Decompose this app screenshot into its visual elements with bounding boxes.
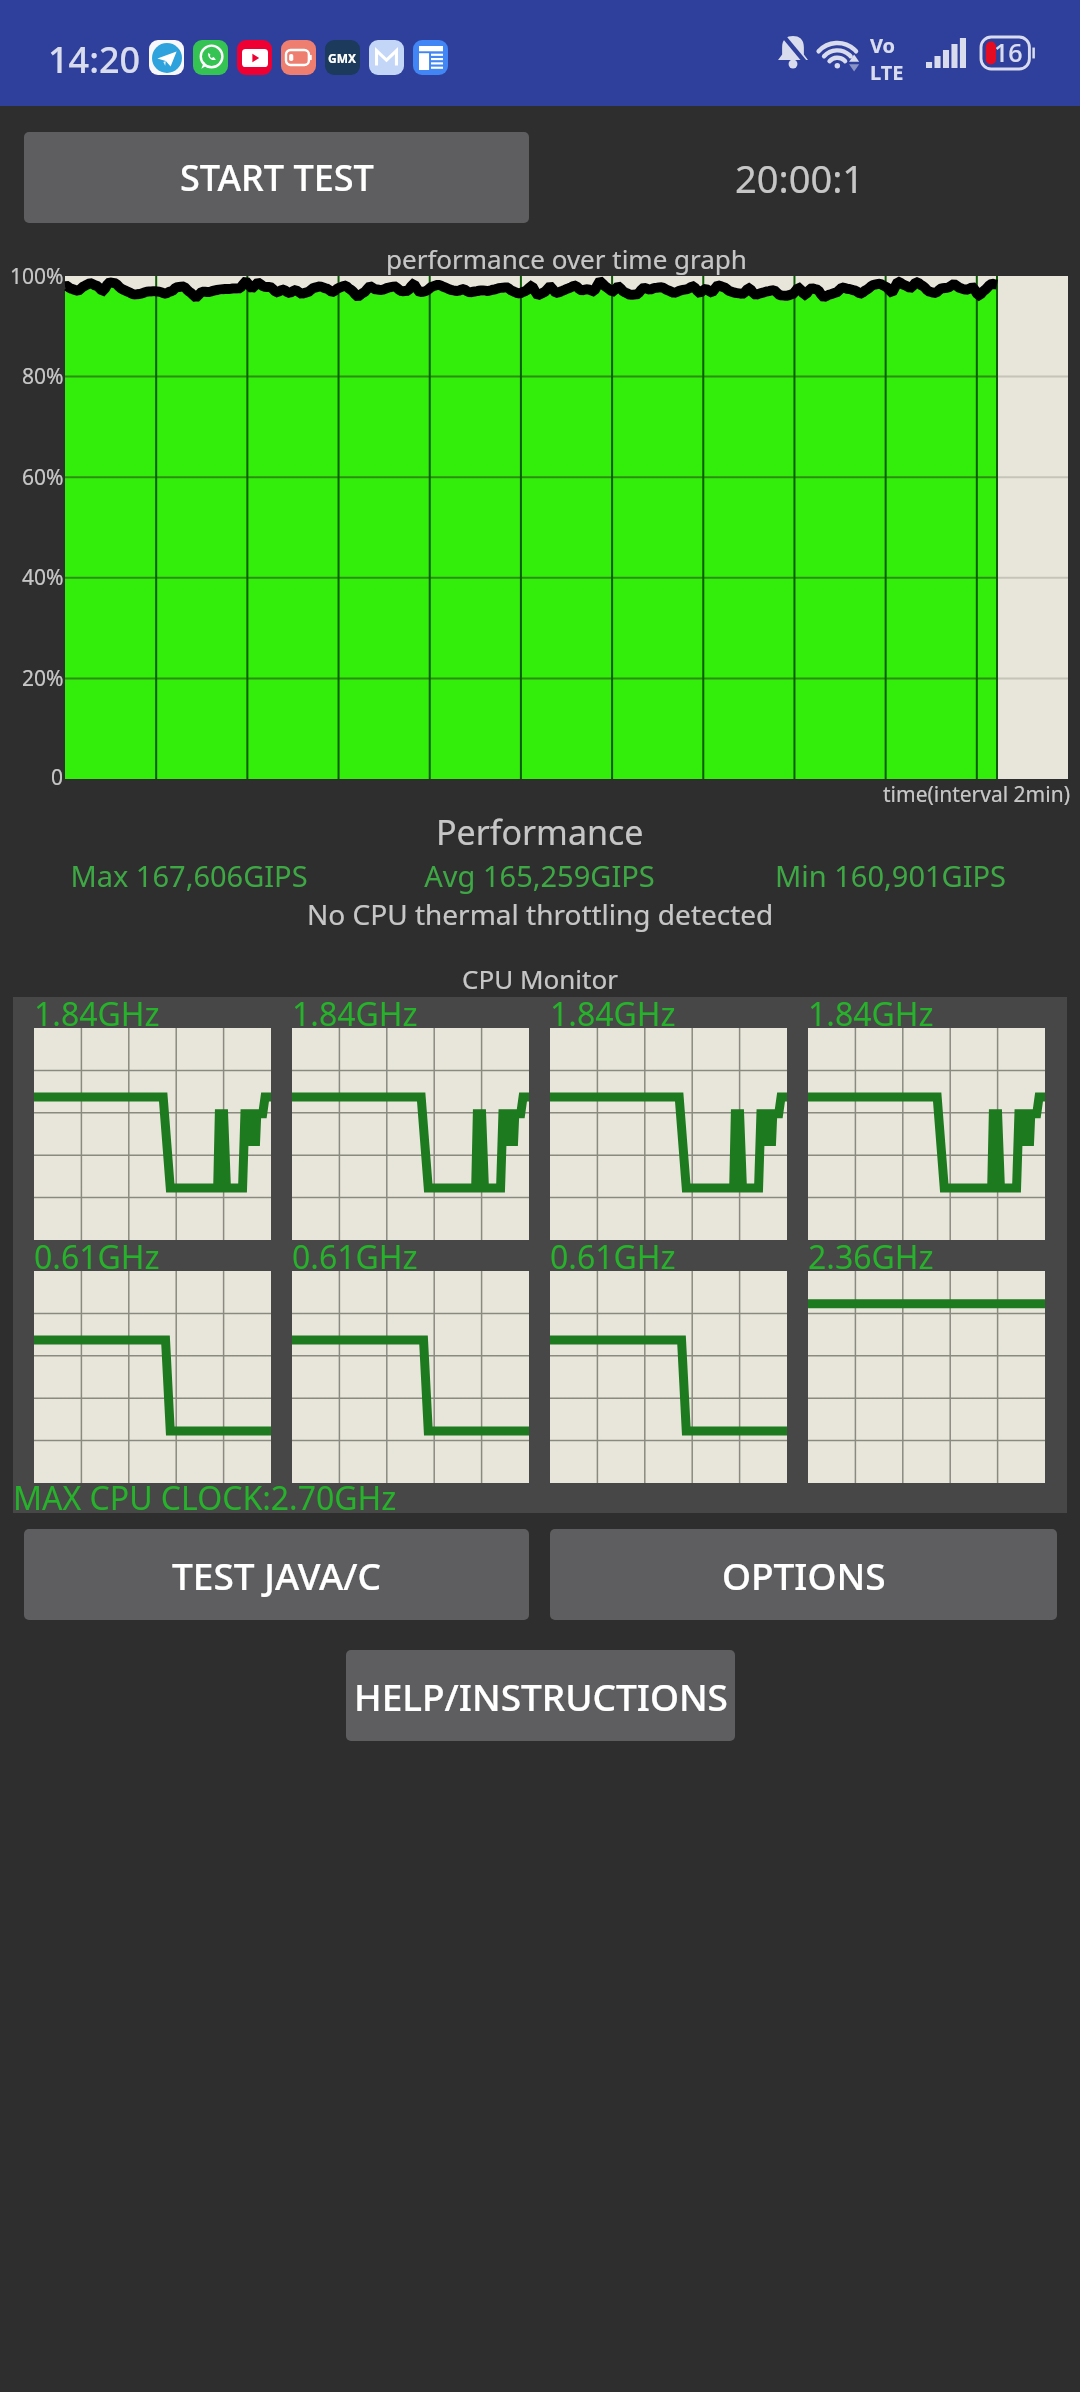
staticText: No CPU thermal throttling detected — [307, 895, 774, 933]
staticText: 80% — [22, 362, 64, 391]
staticText: Min 160,901GIPS — [715, 856, 1066, 895]
staticText: Performance — [436, 809, 644, 855]
button[interactable]: HELP/INSTRUCTIONS — [346, 1650, 735, 1741]
staticText: HELP/INSTRUCTIONS — [354, 1671, 728, 1721]
staticText: Avg 165,259GIPS — [364, 856, 715, 895]
staticText: LTE — [870, 59, 904, 86]
staticText: performance over time graph — [386, 241, 747, 276]
staticText: TEST JAVA/C — [172, 1550, 381, 1600]
staticText: 0 — [51, 763, 64, 792]
other: Battery 16% — [980, 36, 1036, 70]
staticText: OPTIONS — [722, 1550, 886, 1600]
button[interactable]: TEST JAVA/C — [24, 1529, 529, 1620]
other: Wi-Fi — [818, 33, 860, 73]
staticText: 0.61GHz — [292, 1235, 418, 1279]
staticText: START TEST — [180, 153, 374, 202]
staticText: 60% — [22, 463, 64, 492]
staticText: 1.84GHz — [550, 992, 676, 1036]
staticText: GMX — [328, 50, 357, 66]
other: Signal — [926, 38, 966, 68]
staticText: 1.84GHz — [808, 992, 934, 1036]
staticText: 0.61GHz — [34, 1235, 160, 1279]
other: Notifications muted — [776, 32, 810, 72]
staticText: 1.84GHz — [34, 992, 160, 1036]
staticText: Max 167,606GIPS — [14, 856, 364, 895]
staticText: 40% — [22, 563, 64, 592]
staticText: 20:00:1 — [735, 152, 865, 204]
button[interactable]: START TEST — [24, 132, 529, 223]
button[interactable]: OPTIONS — [550, 1529, 1057, 1620]
staticText: time(interval 2min) — [883, 780, 1070, 809]
staticText: 14:20 — [48, 35, 141, 84]
staticText: CPU Monitor — [462, 961, 618, 996]
staticText: Vo — [870, 32, 896, 59]
staticText: 16 — [994, 35, 1023, 69]
staticText: 20% — [22, 664, 64, 693]
staticText: 100% — [10, 262, 64, 291]
staticText: 1.84GHz — [292, 992, 418, 1036]
staticText: MAX CPU CLOCK:2.70GHz — [13, 1476, 397, 1520]
staticText: 0.61GHz — [550, 1235, 676, 1279]
staticText: 2.36GHz — [808, 1235, 934, 1279]
